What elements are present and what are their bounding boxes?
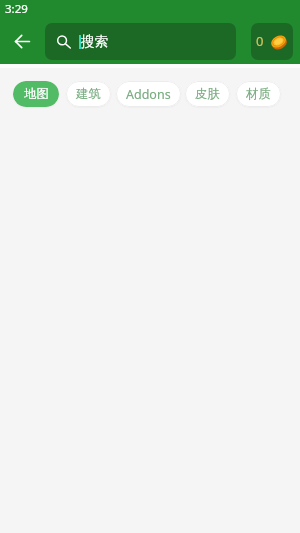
staticText: 0 — [256, 32, 264, 50]
button[interactable]: Back — [4, 23, 40, 59]
staticText: 建筑 — [76, 86, 101, 102]
staticText: 3:29 — [5, 1, 28, 17]
staticText: 材质 — [246, 86, 271, 102]
button[interactable]: 地图 — [13, 81, 59, 107]
button[interactable]: 皮肤 — [185, 81, 230, 107]
button[interactable]: Addons — [116, 81, 181, 107]
button[interactable]: Coins — [251, 23, 293, 60]
button[interactable]: 材质 — [236, 81, 281, 107]
button[interactable]: 搜索 — [45, 23, 236, 60]
staticText: 搜索 — [81, 33, 108, 50]
staticText: 地图 — [24, 86, 49, 102]
button[interactable]: 建筑 — [66, 81, 111, 107]
staticText: 皮肤 — [195, 86, 220, 102]
staticText: Addons — [126, 86, 171, 103]
